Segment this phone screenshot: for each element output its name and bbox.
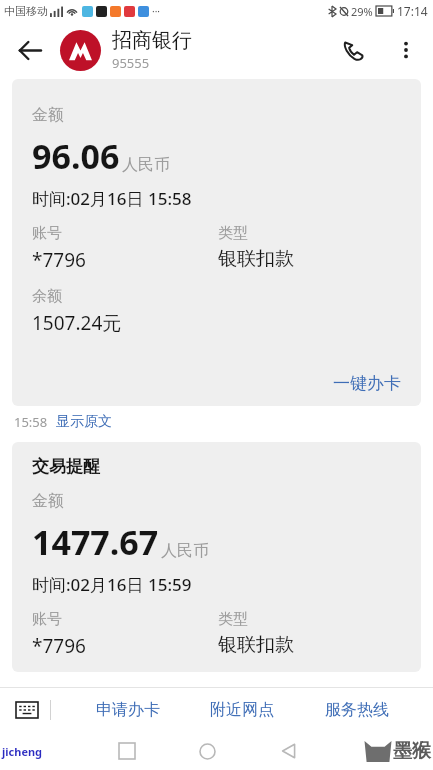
button[interactable]: 服务热线 [319, 692, 395, 728]
staticText: 15:58 [14, 413, 48, 431]
button[interactable]: Back [8, 29, 50, 71]
staticText: 招商银行 [112, 28, 192, 53]
staticText: jicheng [2, 744, 43, 759]
button[interactable]: 交易提醒 [12, 79, 421, 406]
staticText: 附近网点 [210, 700, 274, 720]
button[interactable]: 申请办卡 [90, 692, 166, 728]
button[interactable]: Back [272, 734, 306, 768]
staticText: 95555 [112, 54, 150, 72]
staticText: 17:14 [397, 3, 428, 19]
staticText: 账号 [32, 224, 62, 243]
staticText: 29% [351, 4, 373, 19]
staticText: *7796 [32, 247, 86, 273]
button[interactable]: Call [333, 29, 375, 71]
button[interactable]: Keyboard [10, 693, 44, 727]
button[interactable]: Home [190, 734, 224, 768]
button[interactable]: 显示原文 [54, 411, 114, 433]
staticText: *7796 [32, 633, 86, 659]
staticText: 1477.67 [32, 519, 159, 565]
staticText: 银联扣款 [218, 247, 294, 271]
staticText: 时间:02月16日 15:59 [32, 573, 192, 596]
staticText: 墨猴 [393, 739, 431, 763]
staticText: 金额 [32, 491, 64, 511]
staticText: 类型 [218, 610, 248, 629]
staticText: 时间:02月16日 15:58 [32, 187, 192, 210]
button[interactable]: 附近网点 [204, 692, 280, 728]
staticText: 1507.24元 [32, 310, 122, 336]
staticText: 交易提醒 [32, 456, 100, 477]
staticText: 中国移动 [4, 4, 48, 18]
staticText: 银联扣款 [218, 633, 294, 657]
staticText: 96.06 [32, 133, 120, 179]
staticText: 申请办卡 [96, 700, 160, 720]
button[interactable]: More options [385, 29, 427, 71]
staticText: 账号 [32, 610, 62, 629]
staticText: ··· [152, 4, 161, 18]
staticText: 人民币 [122, 155, 170, 175]
staticText: 类型 [218, 224, 248, 243]
button[interactable]: 交易提醒 [12, 442, 421, 672]
staticText: 服务热线 [325, 700, 389, 720]
button[interactable]: Recent apps [110, 734, 144, 768]
button[interactable]: 一键办卡 [329, 369, 405, 398]
staticText: 人民币 [161, 541, 209, 561]
staticText: 余额 [32, 287, 62, 306]
staticText: 金额 [32, 105, 64, 125]
